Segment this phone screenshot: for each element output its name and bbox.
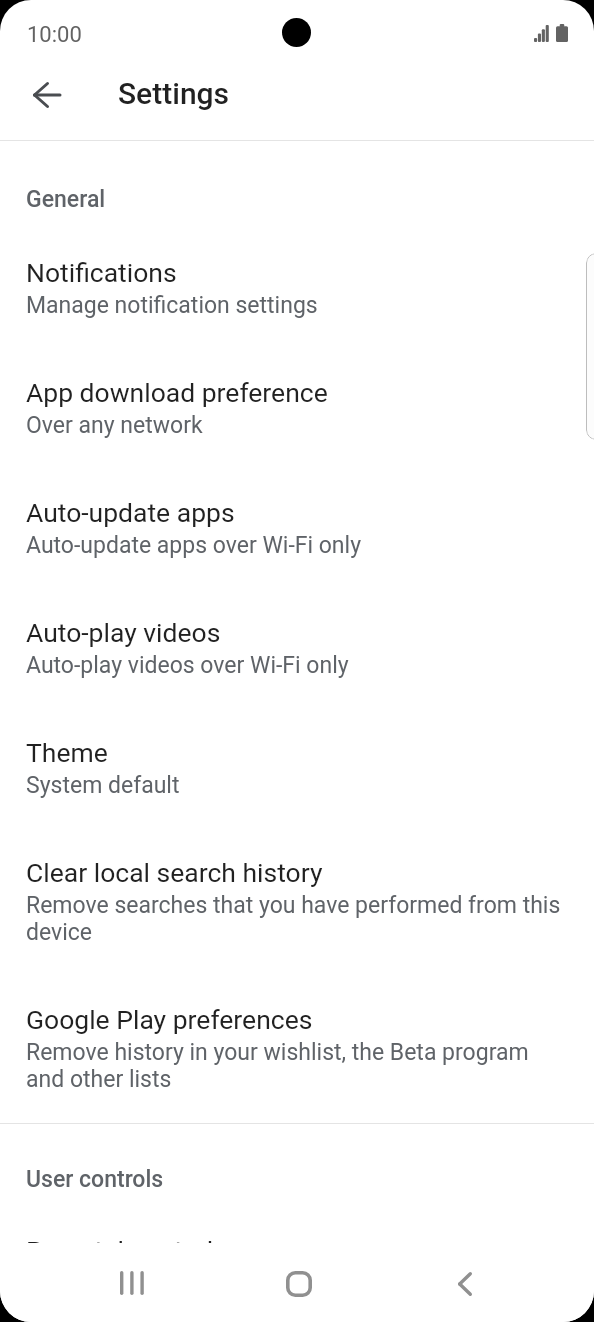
staticText: Notifications [26,257,177,288]
button[interactable]: Theme [0,709,594,829]
staticText: 10:00 [27,22,82,48]
button[interactable]: Navigate up [14,63,78,127]
staticText: System default [26,772,180,799]
button[interactable]: Notifications [0,229,594,349]
staticText: General [26,186,106,213]
staticText: Manage notification settings [26,292,318,319]
staticText: App download preference [26,377,328,408]
staticText: Auto-update apps over Wi-Fi only [26,532,362,559]
button[interactable]: Auto-update apps [0,469,594,589]
staticText: Parental controls [26,1235,227,1247]
button[interactable]: Clear local search history [0,829,594,976]
button[interactable]: Home [267,1252,331,1316]
staticText: Theme [26,737,108,768]
button[interactable]: Parental controls [0,1207,594,1247]
staticText: Remove searches that you have performed … [26,892,568,946]
staticText: User controls [26,1166,164,1193]
button[interactable]: Google Play preferences [0,976,594,1123]
staticText: Auto-play videos over Wi-Fi only [26,652,349,679]
staticText: Google Play preferences [26,1004,313,1035]
button[interactable]: App download preference [0,349,594,469]
staticText: Clear local search history [26,857,323,888]
staticText: Auto-play videos [26,617,221,648]
button[interactable]: Recent apps [101,1251,165,1315]
button[interactable]: Auto-play videos [0,589,594,709]
staticText: Remove history in your wishlist, the Bet… [26,1039,568,1093]
staticText: Settings [118,76,230,111]
button[interactable]: Back [433,1252,497,1316]
staticText: Over any network [26,412,203,439]
staticText: Auto-update apps [26,497,235,528]
